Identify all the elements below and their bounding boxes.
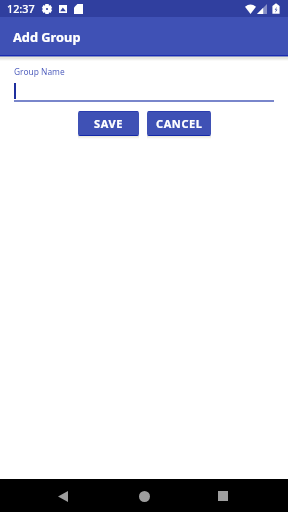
button[interactable]: Recent apps xyxy=(210,483,236,509)
button[interactable]: Group Name xyxy=(14,66,274,102)
button[interactable]: CANCEL xyxy=(147,111,211,136)
staticText: Group Name xyxy=(14,66,65,77)
button[interactable]: Home xyxy=(131,483,157,509)
staticText: CANCEL xyxy=(156,116,203,131)
staticText: 12:37 xyxy=(7,1,35,16)
staticText: SAVE xyxy=(94,116,123,131)
staticText: Add Group xyxy=(13,28,81,45)
button[interactable]: Back xyxy=(50,483,76,509)
button[interactable]: SAVE xyxy=(78,111,139,136)
